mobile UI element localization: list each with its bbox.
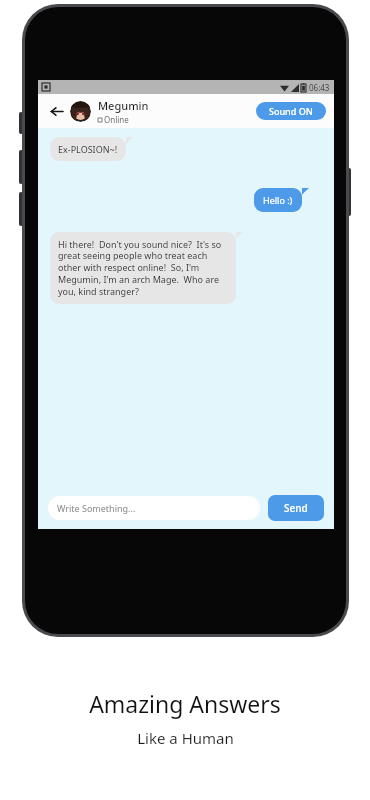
button[interactable]: Send bbox=[268, 495, 324, 521]
staticText: Sound ON bbox=[269, 105, 313, 117]
button[interactable]: Sound ON bbox=[256, 102, 326, 120]
button[interactable]: Write Something... bbox=[48, 496, 260, 520]
button[interactable]: Back bbox=[46, 101, 66, 121]
button[interactable]: Hello :) bbox=[254, 188, 309, 212]
staticText: Ex-PLOSION~! bbox=[58, 143, 118, 155]
staticText: Hello :) bbox=[263, 194, 293, 206]
staticText: Amazing Answers bbox=[89, 688, 281, 719]
staticText: 06:43 bbox=[309, 82, 330, 93]
staticText: Megumin bbox=[98, 98, 149, 113]
staticText: Like a Human bbox=[137, 728, 234, 748]
staticText: Hi there! Don't you sound nice? It's so … bbox=[58, 238, 228, 298]
button[interactable]: Hi there! Don't you sound nice? It's so … bbox=[50, 232, 243, 304]
staticText: Write Something... bbox=[57, 502, 136, 514]
staticText: Online bbox=[104, 114, 129, 125]
staticText: Send bbox=[284, 501, 308, 515]
button[interactable]: Ex-PLOSION~! bbox=[50, 137, 133, 161]
